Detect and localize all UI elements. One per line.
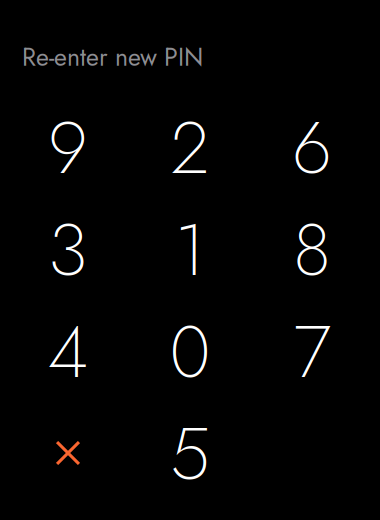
staticText: 9 (48, 96, 88, 200)
button[interactable]: Delete (7, 403, 129, 505)
staticText: 4 (47, 300, 88, 404)
button[interactable]: 8 (251, 199, 373, 301)
staticText: 3 (48, 198, 88, 302)
button[interactable]: 4 (7, 301, 129, 403)
button[interactable]: 6 (251, 97, 373, 199)
staticText: 2 (170, 96, 209, 200)
staticText: 7 (293, 300, 330, 404)
button[interactable]: 1 (129, 199, 251, 301)
button[interactable]: 3 (7, 199, 129, 301)
staticText: 0 (169, 300, 210, 404)
staticText: 6 (292, 96, 332, 200)
button[interactable]: 2 (129, 97, 251, 199)
staticText: 1 (174, 198, 205, 302)
button[interactable]: 5 (129, 403, 251, 505)
button[interactable]: 9 (7, 97, 129, 199)
staticText: 8 (293, 198, 331, 302)
button[interactable]: 0 (129, 301, 251, 403)
staticText: 5 (170, 402, 210, 506)
button[interactable]: 7 (251, 301, 373, 403)
staticText: Re-enter new PIN (22, 39, 203, 75)
